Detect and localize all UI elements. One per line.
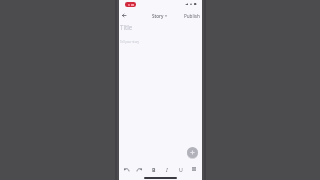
staticText: U (179, 166, 183, 173)
staticText: Tell your story (120, 40, 140, 44)
button[interactable]: B (148, 164, 159, 174)
button[interactable]: I (161, 164, 172, 174)
button[interactable]: Story (151, 12, 168, 20)
staticText: Publish (184, 13, 200, 19)
staticText: Story (152, 13, 164, 19)
button[interactable]: Add content (187, 147, 198, 158)
button[interactable]: Back (119, 10, 129, 20)
button[interactable]: Redo (134, 164, 145, 174)
staticText: Title (120, 23, 133, 31)
button[interactable]: Publish (182, 11, 202, 21)
button[interactable]: U (175, 164, 186, 174)
staticText: I (166, 166, 168, 173)
button[interactable]: List (188, 164, 199, 174)
staticText: B (152, 166, 156, 173)
button[interactable]: Undo (121, 164, 132, 174)
